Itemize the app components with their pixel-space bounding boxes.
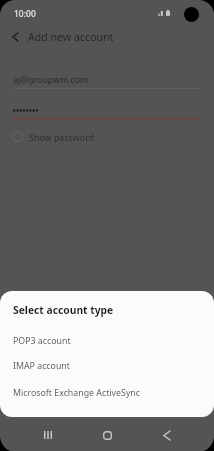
staticText: Add new account	[28, 30, 114, 44]
staticText: 10:00	[14, 8, 36, 20]
button[interactable]: Navigate up	[3, 19, 28, 54]
button[interactable]: Home	[87, 419, 127, 451]
button[interactable]: IMAP account	[0, 354, 214, 378]
staticText: Microsoft Exchange ActiveSync	[13, 387, 141, 399]
staticText: POP3 account	[13, 335, 71, 347]
button[interactable]: Microsoft Exchange ActiveSync	[0, 381, 214, 405]
staticText: IMAP account	[13, 360, 70, 372]
button[interactable]: Back	[147, 419, 187, 451]
button[interactable]: POP3 account	[0, 329, 214, 353]
staticText: Select account type	[13, 303, 114, 317]
button[interactable]: Recent apps	[28, 419, 68, 451]
button[interactable]: Show password	[0, 125, 214, 148]
staticText: aj@groupwm.com	[13, 74, 89, 86]
staticText: Show password	[29, 131, 95, 143]
